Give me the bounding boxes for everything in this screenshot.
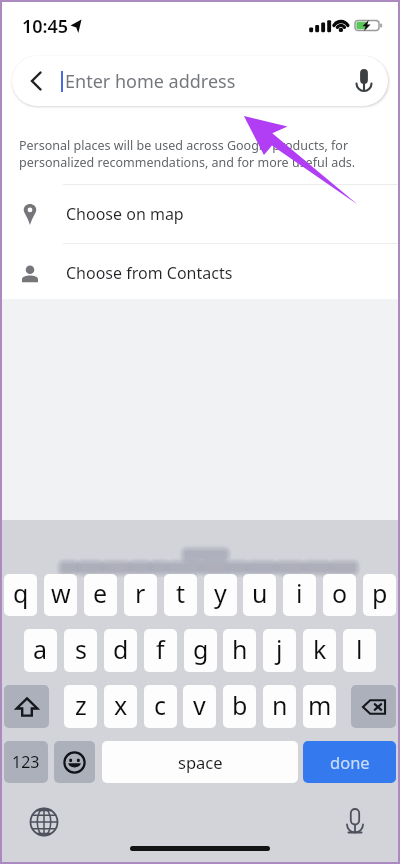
staticText: y <box>214 576 227 610</box>
button[interactable]: t <box>164 574 197 616</box>
button[interactable]: b <box>223 685 256 728</box>
staticText: h <box>232 632 248 666</box>
other: Back <box>12 57 60 105</box>
button[interactable]: z <box>64 685 97 728</box>
button[interactable]: x <box>104 685 137 728</box>
staticText: 123 <box>12 751 40 773</box>
staticText: i <box>296 576 303 610</box>
staticText: l <box>356 632 363 666</box>
button[interactable]: n <box>263 685 296 728</box>
button[interactable]: m <box>303 685 336 728</box>
button[interactable]: d <box>104 629 137 672</box>
staticText: Choose on map <box>66 203 184 225</box>
button[interactable]: v <box>183 685 216 728</box>
staticText: z <box>75 688 87 722</box>
button[interactable]: h <box>223 629 256 672</box>
staticText: space <box>178 751 223 773</box>
staticText: q <box>13 576 29 610</box>
button[interactable]: done <box>303 741 396 783</box>
button[interactable]: Shift <box>4 685 49 728</box>
button[interactable]: e <box>84 574 117 616</box>
staticText: j <box>276 632 283 666</box>
staticText: v <box>193 688 206 722</box>
staticText: w <box>51 576 71 610</box>
button[interactable]: p <box>363 574 396 616</box>
other: Change keyboard <box>29 807 59 837</box>
staticText: t <box>176 576 186 610</box>
button[interactable]: i <box>283 574 316 616</box>
staticText: e <box>93 576 108 610</box>
staticText: Enter home address <box>65 69 236 94</box>
staticText: d <box>113 632 129 666</box>
button[interactable]: 123 <box>4 741 48 783</box>
button[interactable]: q <box>4 574 37 616</box>
staticText: u <box>252 576 268 610</box>
staticText: x <box>114 688 128 722</box>
button[interactable]: g <box>184 629 217 672</box>
staticText: m <box>308 688 332 722</box>
staticText: p <box>372 576 388 610</box>
button[interactable]: o <box>323 574 356 616</box>
staticText: k <box>313 632 327 666</box>
staticText: Personal places will be used across Goog… <box>19 137 356 171</box>
button[interactable]: w <box>44 574 77 616</box>
button[interactable]: Choose on map <box>0 185 400 243</box>
button[interactable]: Back <box>12 56 388 106</box>
button[interactable]: r <box>124 574 157 616</box>
button[interactable]: Choose from Contacts <box>0 244 400 302</box>
staticText: done <box>330 751 370 773</box>
button[interactable]: l <box>343 629 376 672</box>
staticText: n <box>272 688 288 722</box>
button[interactable]: y <box>204 574 237 616</box>
button[interactable]: j <box>263 629 296 672</box>
button[interactable]: k <box>303 629 336 672</box>
staticText: g <box>193 632 209 666</box>
staticText: s <box>75 632 87 666</box>
staticText: a <box>33 632 48 666</box>
staticText: Choose from Contacts <box>66 262 233 284</box>
button[interactable]: a <box>24 629 57 672</box>
button[interactable]: Emoji <box>54 741 95 783</box>
button[interactable]: c <box>144 685 177 728</box>
button[interactable]: f <box>144 629 177 672</box>
staticText: b <box>232 688 248 722</box>
other: Voice search <box>340 57 388 105</box>
other: Dictation <box>340 806 370 836</box>
staticText: r <box>135 576 146 610</box>
button[interactable]: s <box>64 629 97 672</box>
button[interactable]: u <box>243 574 276 616</box>
staticText: 10:45 <box>22 14 69 39</box>
button[interactable]: Backspace <box>351 685 396 728</box>
staticText: c <box>154 688 167 722</box>
button[interactable]: space <box>102 741 298 783</box>
staticText: f <box>156 632 165 666</box>
staticText: o <box>332 576 348 610</box>
